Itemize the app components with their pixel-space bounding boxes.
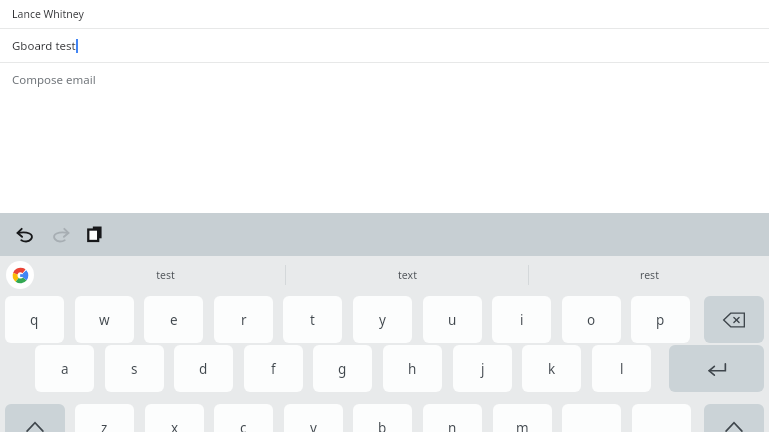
staticText: u <box>448 311 457 329</box>
button[interactable]: m <box>493 404 552 432</box>
button[interactable]: u <box>423 296 482 343</box>
button[interactable]: text <box>286 256 528 294</box>
staticText: Lance Whitney <box>12 7 84 21</box>
button[interactable]: n <box>423 404 482 432</box>
button[interactable]: l <box>592 345 651 392</box>
button[interactable]: p <box>631 296 690 343</box>
button[interactable]: Shift <box>5 404 65 432</box>
staticText: w <box>99 311 110 329</box>
button[interactable]: t <box>283 296 342 343</box>
button[interactable]: j <box>453 345 512 392</box>
button[interactable]: g <box>313 345 372 392</box>
button[interactable]: rest <box>529 256 769 294</box>
staticText: r <box>241 311 247 329</box>
button[interactable]: Backspace <box>704 296 764 343</box>
staticText: h <box>408 360 417 378</box>
staticText: n <box>448 419 457 432</box>
staticText: i <box>520 311 524 329</box>
button[interactable]: Shift right <box>704 404 764 432</box>
staticText: l <box>620 360 624 378</box>
button[interactable]: y <box>353 296 412 343</box>
button[interactable]: v <box>284 404 343 432</box>
button[interactable]: Clipboard <box>81 220 110 249</box>
staticText: text <box>398 268 417 282</box>
button[interactable]: q <box>5 296 64 343</box>
staticText: z <box>101 419 108 432</box>
staticText: d <box>199 360 208 378</box>
button[interactable]: Enter <box>669 345 764 392</box>
button[interactable]: b <box>353 404 412 432</box>
button[interactable]: test <box>46 256 285 294</box>
staticText: k <box>548 360 556 378</box>
staticText: t <box>310 311 315 329</box>
button[interactable]: s <box>105 345 164 392</box>
staticText: o <box>587 311 596 329</box>
staticText: rest <box>640 268 659 282</box>
button[interactable]: e <box>144 296 203 343</box>
button[interactable]: o <box>562 296 621 343</box>
staticText: v <box>310 419 317 432</box>
staticText: y <box>379 311 386 329</box>
staticText: Compose email <box>12 72 96 88</box>
staticText: s <box>131 360 138 378</box>
button[interactable]: k <box>522 345 581 392</box>
button[interactable]: Undo <box>11 220 40 249</box>
button[interactable]: Redo <box>46 220 75 249</box>
button[interactable]: a <box>35 345 94 392</box>
button[interactable]: w <box>75 296 134 343</box>
button[interactable]: f <box>244 345 303 392</box>
staticText: test <box>156 268 175 282</box>
staticText: p <box>656 311 665 329</box>
staticText: q <box>30 311 39 329</box>
staticText: x <box>171 419 179 432</box>
button[interactable]: Lance Whitney <box>0 0 769 28</box>
button[interactable]: x <box>145 404 204 432</box>
staticText: c <box>240 419 247 432</box>
staticText: f <box>271 360 276 378</box>
button[interactable]: r <box>214 296 273 343</box>
button[interactable]: Compose email <box>0 63 769 96</box>
button[interactable]: z <box>75 404 134 432</box>
button[interactable]: d <box>174 345 233 392</box>
button[interactable]: c <box>214 404 273 432</box>
staticText: g <box>338 360 347 378</box>
staticText: Gboard test <box>12 38 76 54</box>
staticText: m <box>516 419 529 432</box>
staticText: e <box>170 311 178 329</box>
staticText: j <box>481 360 485 378</box>
button[interactable]: Google <box>6 261 34 289</box>
button[interactable]: Gboard test <box>0 29 769 62</box>
staticText: b <box>378 419 387 432</box>
staticText: a <box>61 360 69 378</box>
button[interactable]: i <box>492 296 551 343</box>
button[interactable]: h <box>383 345 442 392</box>
